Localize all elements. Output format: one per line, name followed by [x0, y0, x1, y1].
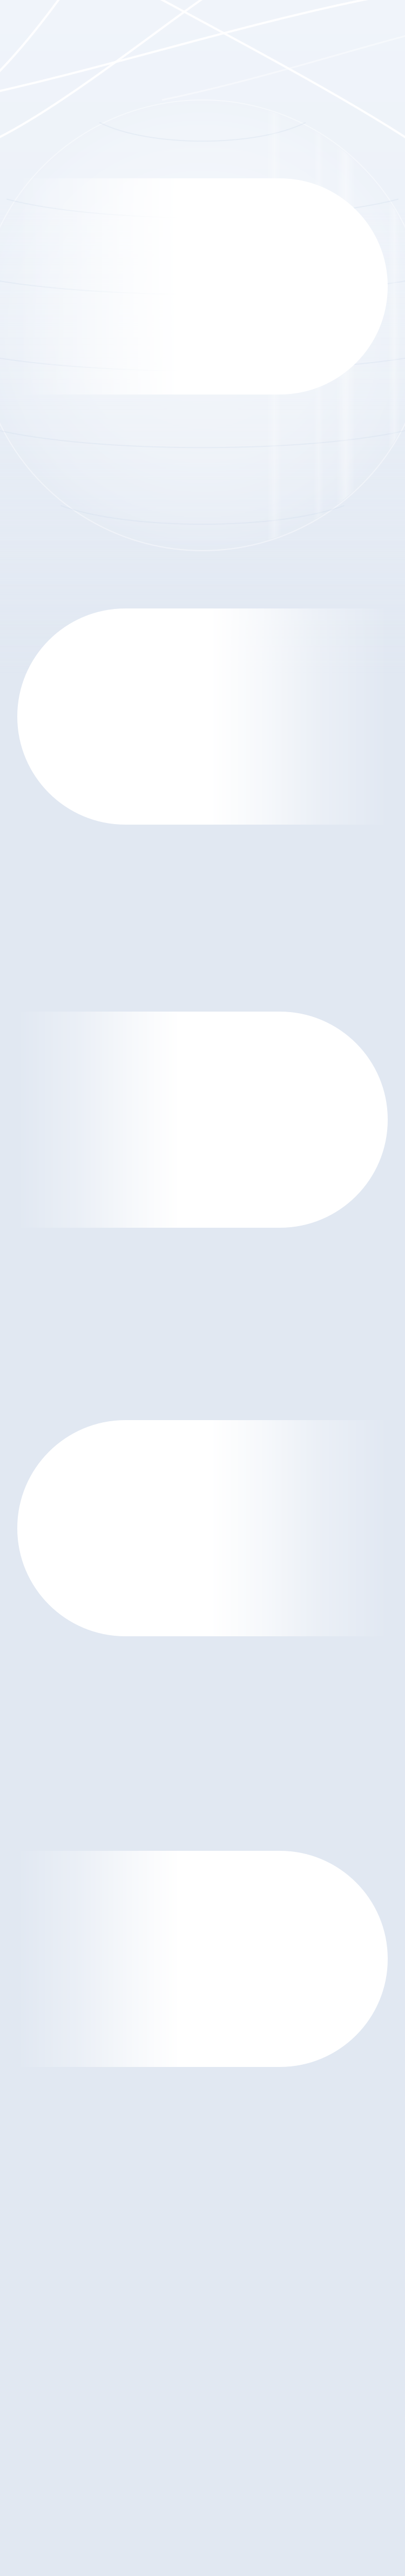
button[interactable]: Card	[0, 1851, 370, 2067]
button[interactable]: Card	[0, 1420, 370, 1636]
button[interactable]: Card	[0, 608, 370, 825]
button[interactable]: Card	[0, 1012, 370, 1228]
button[interactable]: Card	[0, 178, 370, 394]
